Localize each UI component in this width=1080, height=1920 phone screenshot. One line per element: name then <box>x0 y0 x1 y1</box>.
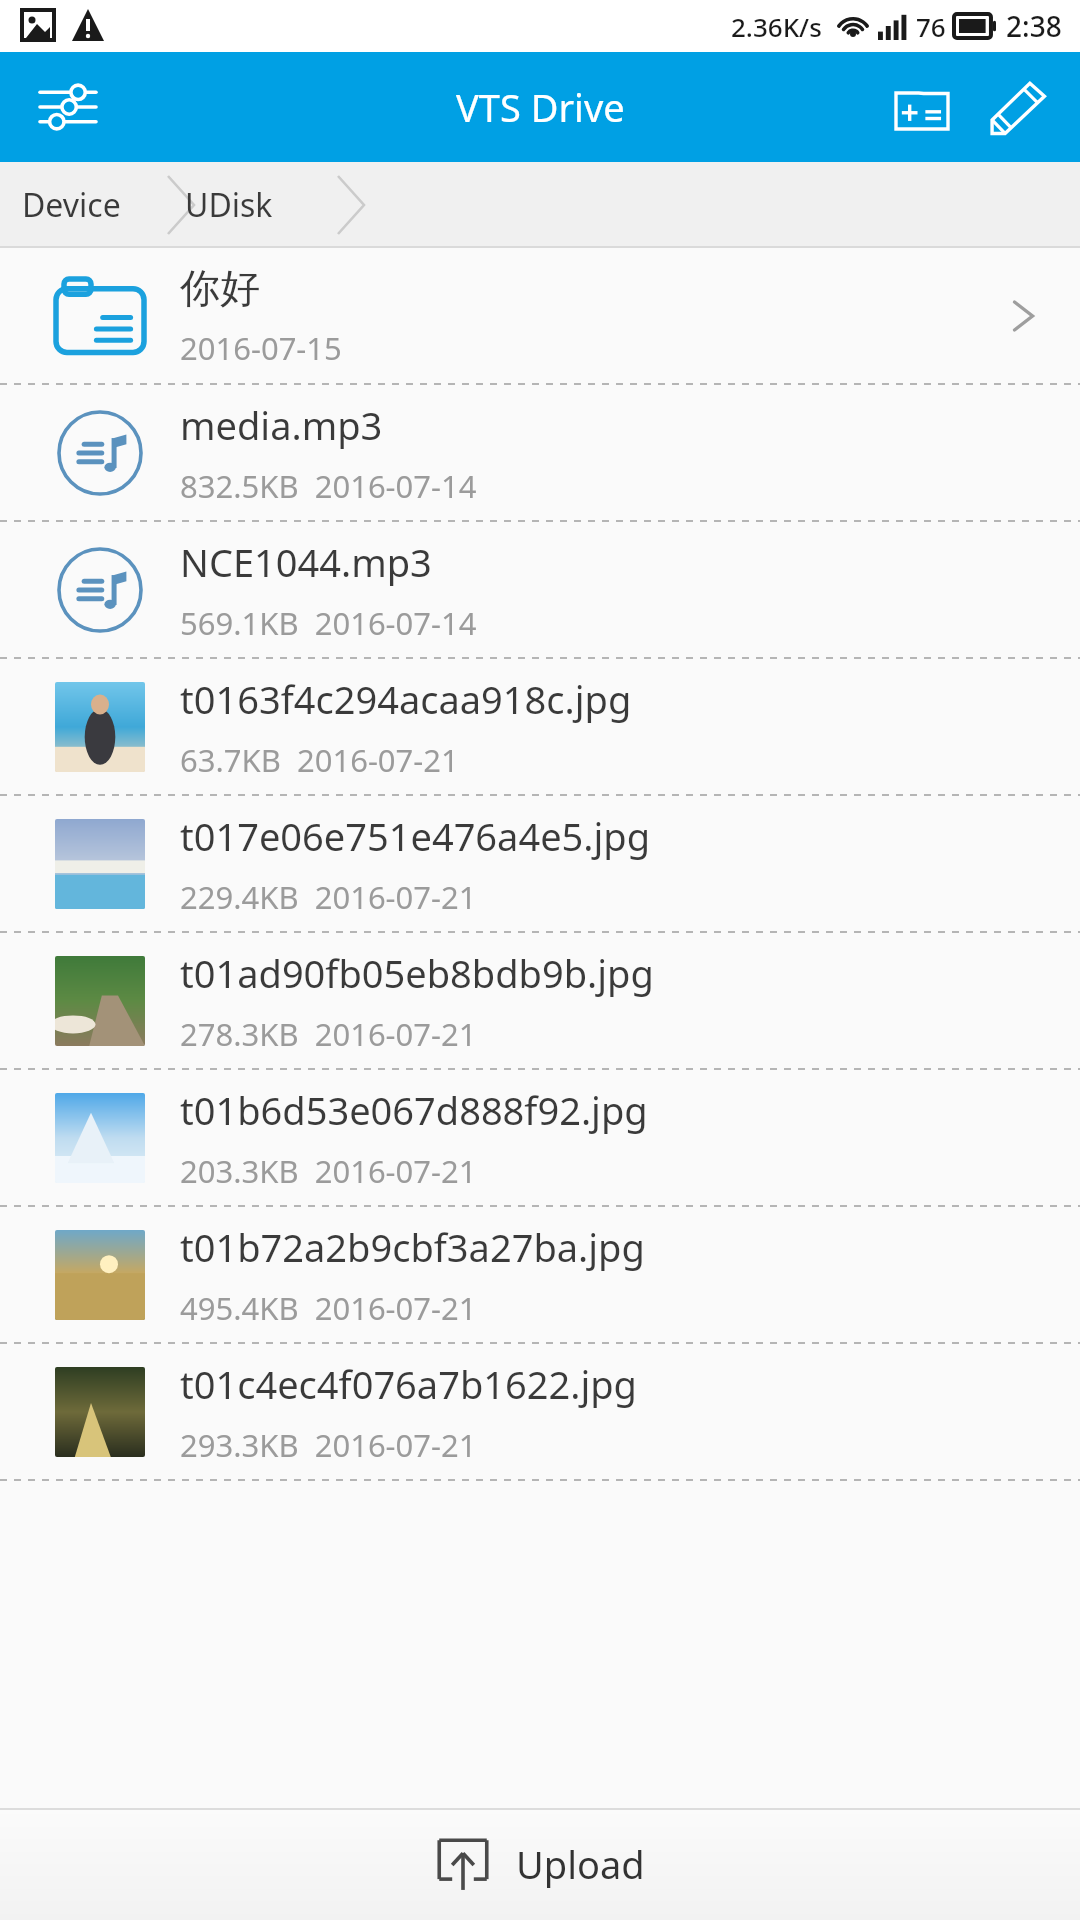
button[interactable]: Filter <box>28 67 108 147</box>
staticText: t01b6d53e067d888f92.jpg <box>180 1084 648 1136</box>
button[interactable]: Edit <box>970 59 1066 155</box>
button[interactable]: NCE1044.mp3 <box>0 522 1080 657</box>
button[interactable]: t01ad90fb05eb8bdb9b.jpg <box>0 933 1080 1068</box>
button[interactable]: t017e06e751e476a4e5.jpg <box>0 796 1080 931</box>
staticText: 2:38 <box>1006 7 1062 45</box>
staticText: 278.3KB 2016-07-21 <box>180 1013 477 1055</box>
staticText: NCE1044.mp3 <box>180 536 432 588</box>
button[interactable]: t0163f4c294acaa918c.jpg <box>0 659 1080 794</box>
staticText: 你好 <box>180 263 260 313</box>
staticText: media.mp3 <box>180 399 383 451</box>
button[interactable]: Upload <box>0 1808 1080 1920</box>
button[interactable]: t01b6d53e067d888f92.jpg <box>0 1070 1080 1205</box>
staticText: 63.7KB 2016-07-21 <box>180 739 459 781</box>
staticText: 203.3KB 2016-07-21 <box>180 1150 477 1192</box>
staticText: VTS Drive <box>456 81 625 133</box>
staticText: 569.1KB 2016-07-14 <box>180 602 477 644</box>
staticText: t017e06e751e476a4e5.jpg <box>180 810 651 862</box>
staticText: Upload <box>516 1838 645 1890</box>
staticText: 229.4KB 2016-07-21 <box>180 876 477 918</box>
staticText: 76 <box>916 9 946 44</box>
button[interactable]: Device <box>0 162 141 248</box>
staticText: 495.4KB 2016-07-21 <box>180 1287 477 1329</box>
button[interactable]: 你好 <box>0 248 1080 383</box>
staticText: t01ad90fb05eb8bdb9b.jpg <box>180 947 654 999</box>
button[interactable]: media.mp3 <box>0 385 1080 520</box>
staticText: t01b72a2b9cbf3a27ba.jpg <box>180 1221 645 1273</box>
staticText: t0163f4c294acaa918c.jpg <box>180 673 632 725</box>
staticText: Device <box>22 183 121 227</box>
staticText: 293.3KB 2016-07-21 <box>180 1424 477 1466</box>
button[interactable]: t01c4ec4f076a7b1622.jpg <box>0 1344 1080 1479</box>
staticText: 2.36K/s <box>731 9 822 44</box>
staticText: 832.5KB 2016-07-14 <box>180 465 477 507</box>
staticText: t01c4ec4f076a7b1622.jpg <box>180 1358 637 1410</box>
button[interactable]: UDisk <box>177 162 281 248</box>
staticText: 2016-07-15 <box>180 327 342 369</box>
button[interactable]: t01b72a2b9cbf3a27ba.jpg <box>0 1207 1080 1342</box>
staticText: UDisk <box>185 183 273 227</box>
button[interactable]: New folder <box>874 59 970 155</box>
